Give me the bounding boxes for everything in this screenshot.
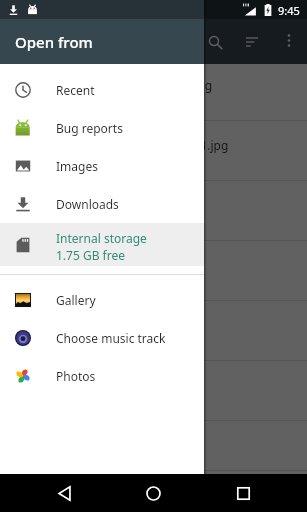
button[interactable]: Bug reports (0, 109, 204, 147)
staticText: Jan 1 (125, 334, 148, 348)
button[interactable]: holiday_2014.png (0, 301, 307, 361)
staticText: wallpaper_blue.png (88, 257, 199, 273)
staticText: IMG_20150101_0945.png (70, 77, 213, 93)
button[interactable]: Photos (0, 357, 204, 395)
button[interactable]: Choose music track (0, 319, 204, 357)
staticText: Internal storage (56, 230, 147, 246)
button[interactable]: IMG_20150101_0945.png (0, 61, 307, 121)
staticText: camera_roll_01.png (86, 377, 196, 393)
staticText: Open from (15, 32, 93, 52)
staticText: Jan 1 (122, 214, 145, 228)
button[interactable]: Back (42, 474, 86, 512)
button[interactable]: Screenshot_01.png (0, 181, 307, 241)
staticText: Downloads (56, 196, 119, 212)
staticText: Bug reports (56, 120, 123, 136)
staticText: Jan 1 (118, 274, 141, 288)
staticText: 1.75 GB free (56, 247, 125, 263)
button[interactable]: DSC_0002181.jpg (0, 121, 307, 181)
staticText: DSC_0002181.jpg (131, 137, 229, 153)
button[interactable]: Images (0, 147, 204, 185)
button[interactable]: Gallery (0, 281, 204, 319)
staticText: Recent (56, 82, 95, 98)
button[interactable]: camera_roll_01.png (0, 361, 307, 421)
staticText: Choose music track (56, 330, 166, 346)
button[interactable]: wallpaper_blue.png (0, 241, 307, 301)
staticText: Photos (56, 368, 96, 384)
button[interactable]: Sort (230, 20, 274, 64)
staticText: Screenshot_01.png (92, 197, 200, 213)
staticText: Images (56, 158, 98, 174)
button[interactable]: Home (131, 474, 176, 512)
button[interactable]: Internal storage (0, 223, 204, 266)
button[interactable]: Recent (0, 71, 204, 109)
button[interactable]: note_scan_88.png (0, 421, 307, 471)
staticText: Gallery (56, 292, 96, 308)
button[interactable]: Downloads (0, 185, 204, 223)
button[interactable]: Search (193, 20, 237, 64)
button[interactable]: Recent apps (221, 474, 265, 512)
staticText: 9:45 (278, 3, 300, 18)
button[interactable]: More options (269, 20, 307, 60)
